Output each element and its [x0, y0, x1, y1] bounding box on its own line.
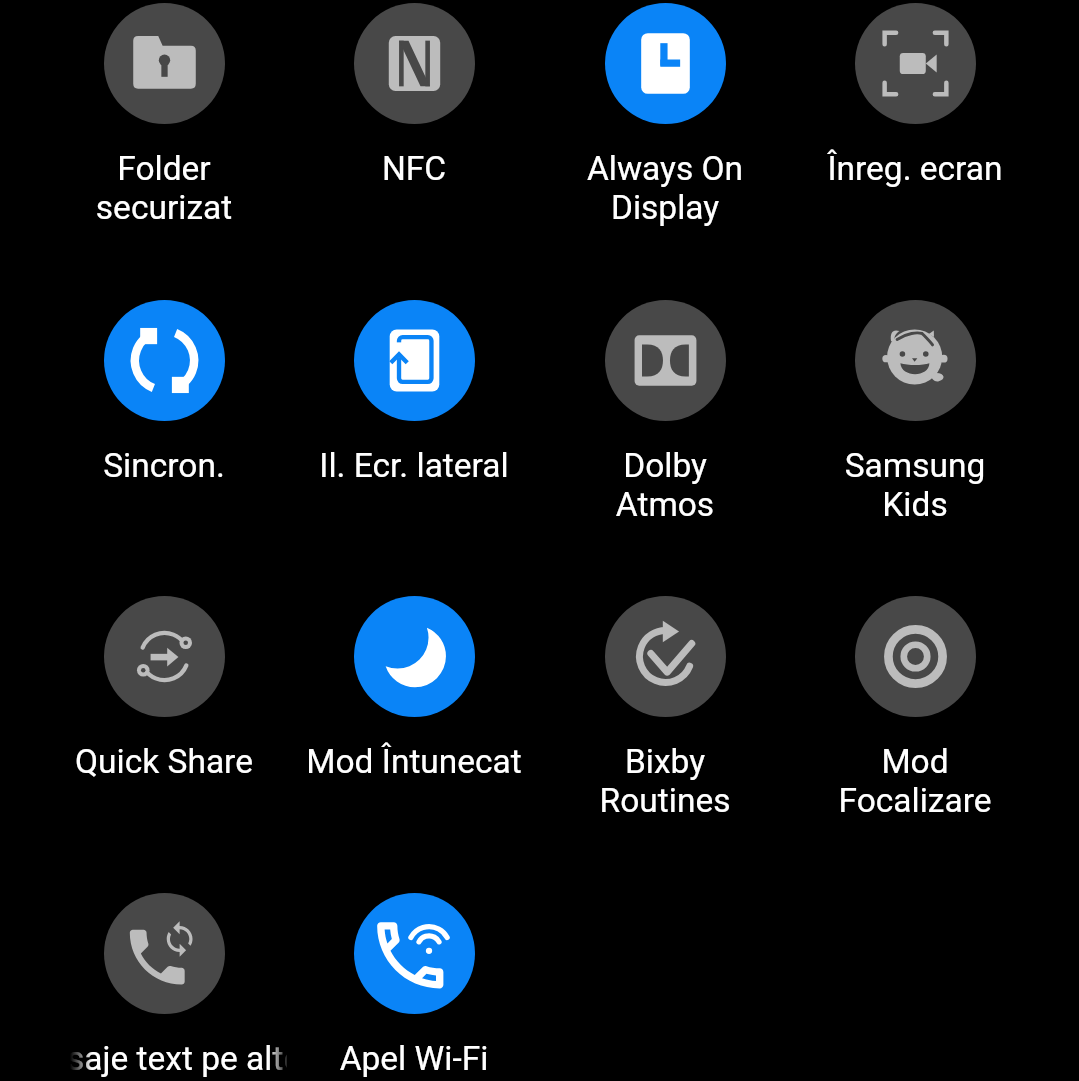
staticText: securizat — [39, 188, 289, 227]
button[interactable]: Quick Share — [39, 584, 289, 829]
staticText: Il. Ecr. lateral — [289, 446, 539, 485]
staticText: Always On — [540, 149, 790, 188]
staticText: Quick Share — [39, 742, 289, 781]
button[interactable]: Il. Ecr. lateral — [289, 288, 539, 533]
button[interactable]: Bixby Routines — [540, 584, 790, 829]
button[interactable]: Apel Wi-Fi — [289, 881, 539, 1081]
button[interactable]: Folder securizat — [39, 0, 289, 236]
staticText: Înreg. ecran — [790, 149, 1040, 188]
staticText: Display — [540, 188, 790, 227]
staticText: Bixby — [540, 742, 790, 781]
staticText: Kids — [790, 485, 1040, 524]
button[interactable]: Mod Focalizare — [790, 584, 1040, 829]
staticText: Sincron. — [39, 446, 289, 485]
button[interactable]: Mesaje text pe alte dispozitive — [39, 881, 289, 1081]
staticText: Atmos — [540, 485, 790, 524]
button[interactable]: Sincron. — [39, 288, 289, 533]
staticText: Focalizare — [790, 781, 1040, 820]
staticText: Dolby — [540, 446, 790, 485]
button[interactable]: Always On Display — [540, 0, 790, 236]
button[interactable]: Dolby Atmos — [540, 288, 790, 533]
button[interactable]: Înreg. ecran — [790, 0, 1040, 236]
staticText: NFC — [289, 149, 539, 188]
staticText: Folder — [39, 149, 289, 188]
button[interactable]: Mod Întunecat — [289, 584, 539, 829]
staticText: Routines — [540, 781, 790, 820]
button[interactable]: Samsung Kids — [790, 288, 1040, 533]
button[interactable]: NFC — [289, 0, 539, 236]
staticText: Mod — [790, 742, 1040, 781]
staticText: Mod Întunecat — [289, 742, 539, 781]
staticText: Samsung — [790, 446, 1040, 485]
staticText: saje text pe alte — [70, 1039, 287, 1078]
staticText: Apel Wi-Fi — [289, 1039, 539, 1078]
